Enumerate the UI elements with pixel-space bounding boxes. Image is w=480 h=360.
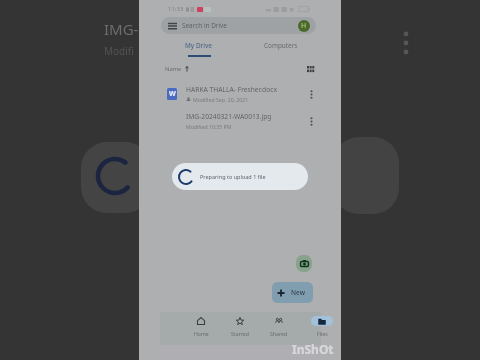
button[interactable]: Scan document with camera	[296, 255, 312, 272]
button[interactable]: New	[272, 282, 313, 303]
button[interactable]: Preparing to upload 1 file	[172, 163, 308, 190]
button[interactable]: Shared	[260, 316, 298, 342]
staticText: Starred	[231, 330, 249, 337]
staticText: IMG-	[104, 19, 139, 39]
staticText: New	[291, 288, 305, 297]
staticText: 11:33	[168, 5, 184, 13]
staticText: Preparing to upload 1 file	[200, 173, 266, 180]
staticText: InShOt	[292, 341, 334, 357]
button[interactable]: More options	[303, 113, 319, 129]
button[interactable]: W	[154, 82, 319, 106]
staticText: Computers	[264, 41, 298, 50]
staticText: IMG-20240321-WA0013.jpg	[186, 112, 272, 121]
button[interactable]: More options	[303, 86, 319, 102]
button[interactable]: Name	[165, 64, 189, 73]
button[interactable]: Switch to grid view	[300, 59, 320, 79]
staticText: Modified 10:35 PM	[186, 123, 232, 130]
staticText: Modified Sep. 20, 2021	[193, 96, 249, 103]
staticText: Name	[165, 65, 182, 73]
button[interactable]: Starred	[221, 316, 259, 342]
staticText: W	[169, 89, 176, 99]
button[interactable]: Files	[303, 316, 341, 342]
staticText: HARKA THALLA- Fresher.docx	[186, 85, 278, 94]
staticText: Shared	[270, 330, 288, 337]
staticText: Search in Drive	[182, 21, 227, 30]
button[interactable]: IMG-20240321-WA0013.jpg	[154, 109, 319, 133]
staticText: H	[301, 21, 307, 31]
button[interactable]: My Drive	[169, 41, 229, 59]
staticText: Modifi	[104, 44, 134, 58]
staticText: Home	[194, 330, 209, 337]
button[interactable]: Computers	[251, 41, 311, 59]
staticText: My Drive	[185, 41, 213, 50]
staticText: Files	[317, 330, 328, 337]
button[interactable]: Search in Drive	[161, 17, 316, 34]
button[interactable]: Home	[182, 316, 220, 342]
